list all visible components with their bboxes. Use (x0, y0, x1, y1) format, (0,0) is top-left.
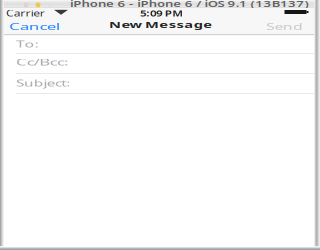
button[interactable]: Cancel (9, 17, 61, 36)
staticText: Cc/Bcc: (16, 56, 46, 68)
staticText: Send (266, 20, 288, 33)
staticText: New Message (109, 18, 175, 31)
staticText: Carrier (6, 7, 36, 19)
staticText: 5:09 PM (140, 7, 175, 19)
staticText: To: (16, 38, 30, 50)
button[interactable]: Send (266, 17, 306, 36)
staticText: Subject: (16, 77, 50, 89)
staticText: Cancel (9, 20, 37, 33)
staticText: iPhone 6 - iPhone 6 / iOS 9.1 (13B137) (70, 0, 216, 9)
